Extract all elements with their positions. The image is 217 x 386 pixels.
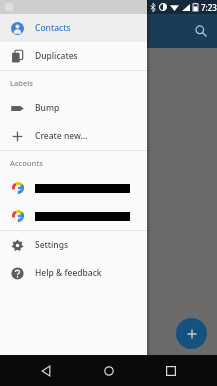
button[interactable]: Duplicates bbox=[0, 42, 147, 70]
staticText: Accounts bbox=[10, 158, 43, 168]
button[interactable] bbox=[0, 202, 147, 230]
button[interactable] bbox=[0, 174, 147, 202]
button[interactable]: Create new... bbox=[0, 122, 147, 150]
button[interactable]: Settings bbox=[0, 231, 147, 259]
staticText: Create new... bbox=[35, 130, 88, 142]
button[interactable]: Back bbox=[29, 355, 63, 386]
button[interactable]: Create contact bbox=[176, 318, 207, 349]
staticText: Duplicates bbox=[35, 50, 78, 62]
staticText: Labels bbox=[10, 78, 33, 88]
button[interactable]: Search bbox=[187, 17, 215, 45]
staticText: Help & feedback bbox=[35, 267, 102, 279]
button[interactable]: Contacts bbox=[0, 14, 147, 42]
staticText: 7:23 bbox=[201, 2, 217, 13]
staticText: Bump bbox=[35, 102, 60, 114]
button[interactable]: Bump bbox=[0, 94, 147, 122]
staticText: Settings bbox=[35, 239, 69, 251]
button[interactable]: Help & feedback bbox=[0, 259, 147, 287]
staticText: Contacts bbox=[35, 22, 71, 34]
button[interactable]: Home bbox=[92, 355, 126, 386]
button[interactable]: Recents bbox=[154, 355, 188, 386]
